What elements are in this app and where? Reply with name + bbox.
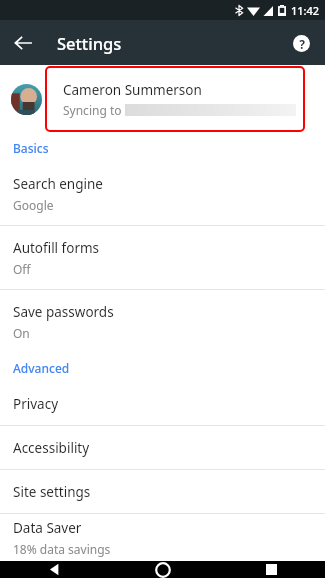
staticText: Google: [13, 197, 54, 213]
staticText: Search engine: [13, 175, 103, 193]
button[interactable]: Navigate up: [7, 27, 39, 59]
button[interactable]: Recent apps: [217, 561, 325, 578]
button[interactable]: Autofill forms: [0, 226, 325, 289]
staticText: Site settings: [13, 483, 91, 501]
staticText: Settings: [57, 32, 122, 54]
staticText: On: [13, 325, 30, 341]
button[interactable]: Site settings: [0, 470, 325, 513]
staticText: Save passwords: [13, 303, 114, 321]
button[interactable]: Home: [109, 561, 217, 578]
button[interactable]: Data Saver: [0, 514, 325, 561]
staticText: Privacy: [13, 395, 59, 413]
staticText: ?: [299, 36, 305, 52]
staticText: Cameron Summerson: [63, 81, 202, 99]
button[interactable]: Save passwords: [0, 290, 325, 353]
button[interactable]: Search engine: [0, 162, 325, 225]
button[interactable]: Accessibility: [0, 426, 325, 469]
button[interactable]: Privacy: [0, 382, 325, 425]
staticText: Advanced: [13, 360, 70, 376]
button[interactable]: Cameron Summerson: [0, 65, 325, 133]
staticText: 11:42: [291, 3, 320, 18]
staticText: Syncing to: [63, 102, 125, 118]
staticText: Basics: [13, 140, 49, 156]
button[interactable]: Back: [0, 561, 109, 578]
staticText: Data Saver: [13, 519, 82, 537]
staticText: Off: [13, 261, 31, 277]
staticText: Autofill forms: [13, 239, 100, 257]
staticText: 18% data savings: [13, 541, 111, 557]
button[interactable]: Help and feedback: [286, 28, 316, 58]
staticText: Accessibility: [13, 439, 90, 457]
